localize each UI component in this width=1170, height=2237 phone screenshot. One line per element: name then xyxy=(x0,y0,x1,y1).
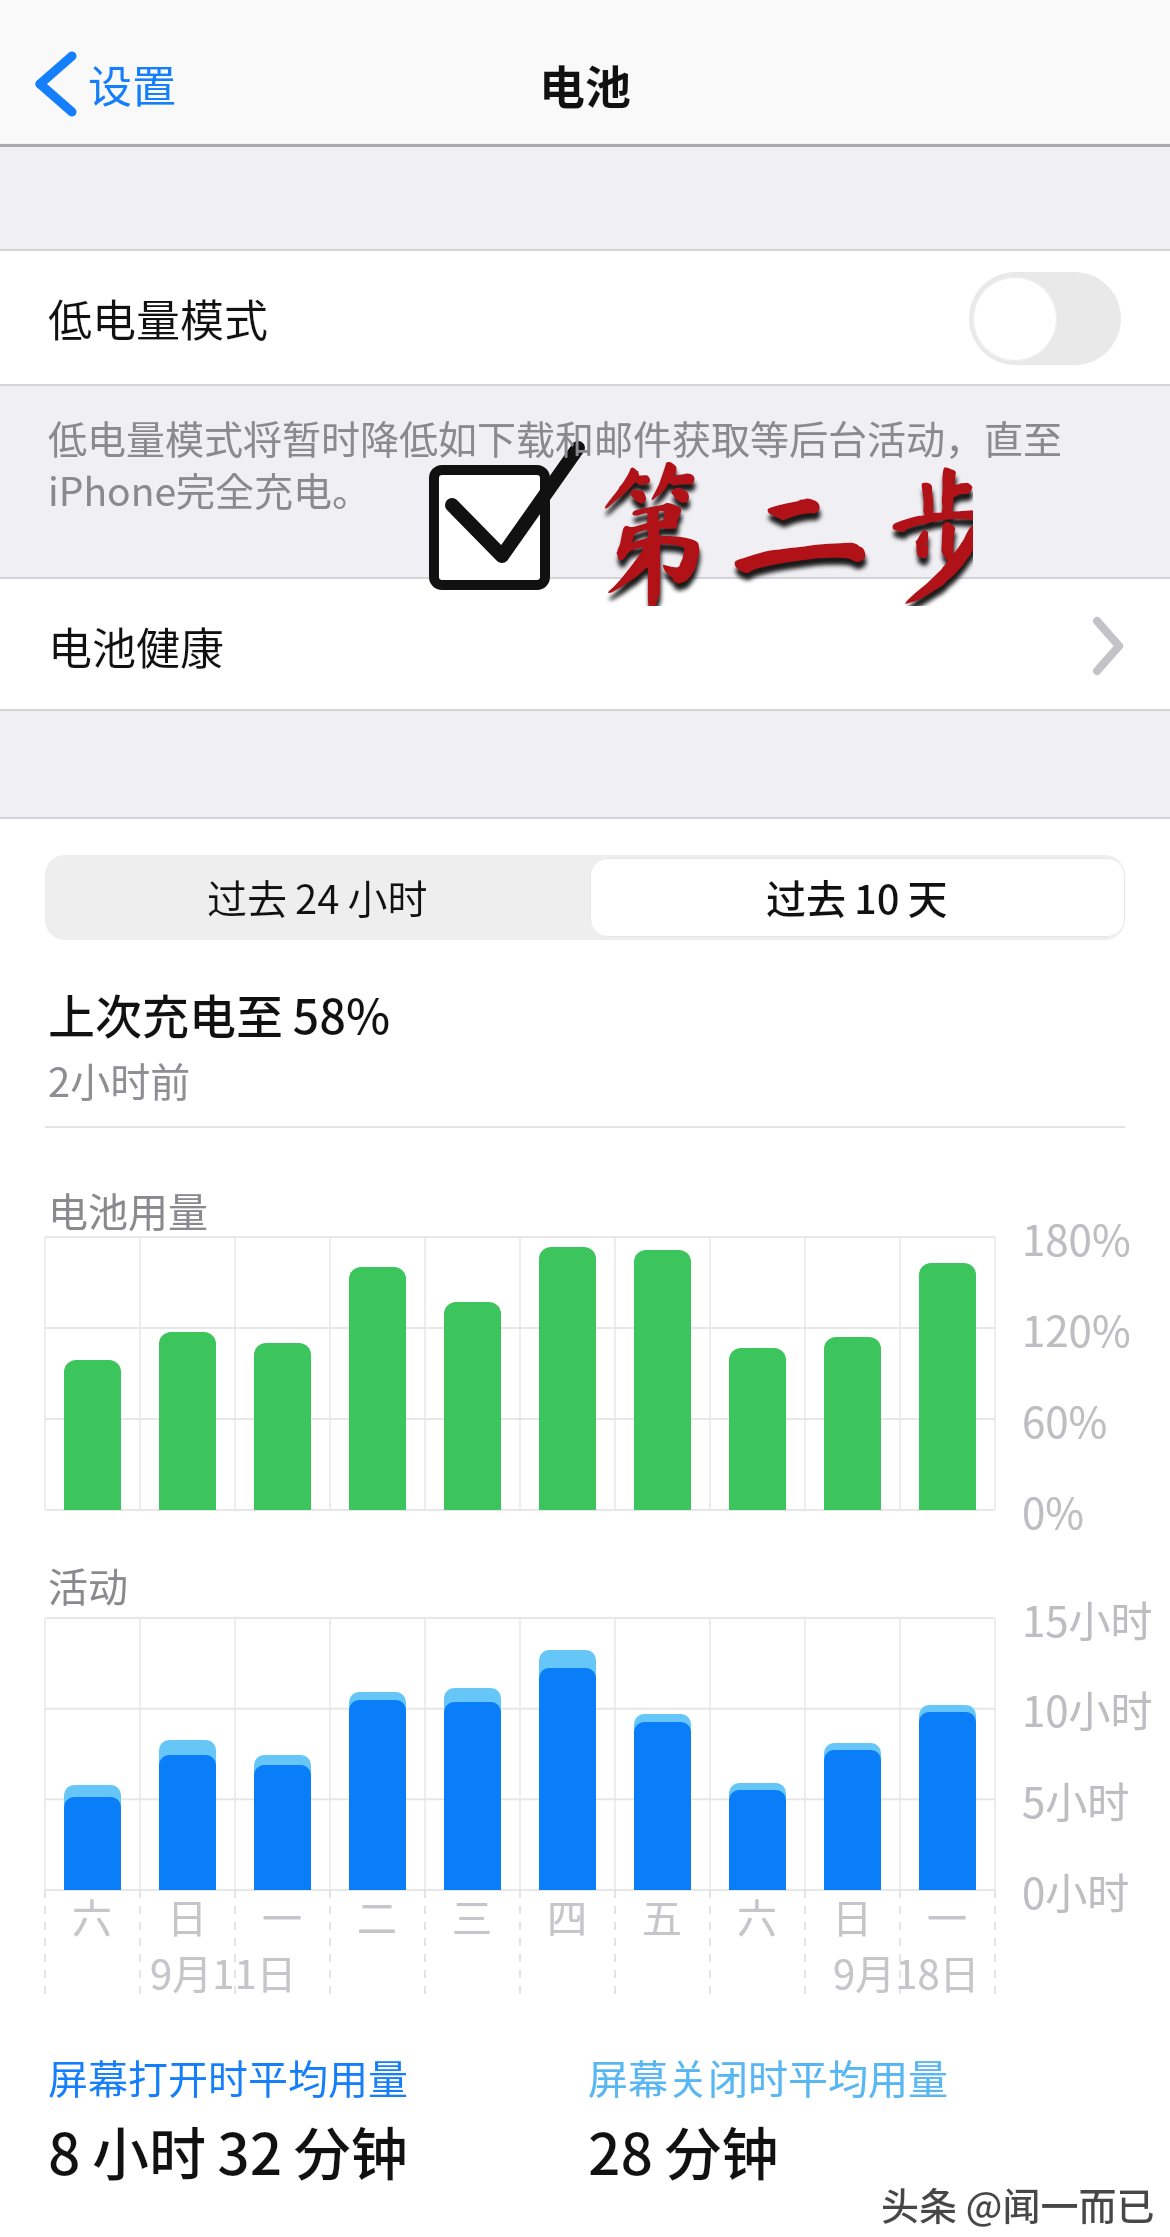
button[interactable] xyxy=(20,40,220,130)
staticText: 四 xyxy=(547,1887,587,1945)
staticText: 10小时 xyxy=(1022,1678,1153,1739)
staticText: 设置 xyxy=(88,52,176,116)
staticText: 日 xyxy=(832,1887,872,1945)
staticText: 六 xyxy=(737,1887,777,1945)
staticText: 电池 xyxy=(539,51,631,118)
staticText: 0小时 xyxy=(1022,1860,1130,1921)
staticText: 9月18日 xyxy=(833,1943,980,2001)
staticText: 一 xyxy=(927,1887,967,1945)
staticText: 日 xyxy=(167,1887,207,1945)
staticText: 头条 @闻一而已 xyxy=(881,2176,1155,2231)
staticText: 过去 10 天 xyxy=(766,868,948,926)
staticText: 三 xyxy=(452,1887,492,1945)
staticText: 0% xyxy=(1022,1480,1084,1541)
staticText: 六 xyxy=(72,1887,112,1945)
staticText: 上次充电至 58% xyxy=(48,979,391,1047)
staticText: 低电量模式 xyxy=(48,286,268,350)
staticText: 屏幕关闭时平均用量 xyxy=(588,2048,948,2106)
staticText: 过去 24 小时 xyxy=(207,868,428,926)
staticText: 二 xyxy=(357,1887,397,1945)
button[interactable] xyxy=(590,858,1125,937)
button[interactable] xyxy=(45,855,590,940)
staticText: 第二步 xyxy=(578,458,973,606)
staticText: 五 xyxy=(642,1887,682,1945)
staticText: 电池健康 xyxy=(48,614,224,678)
staticText: 28 分钟 xyxy=(588,2109,779,2192)
staticText: 低电量模式将暂时降低如下载和邮件获取等后台活动，直至 xyxy=(48,409,1063,465)
staticText: 120% xyxy=(1022,1298,1131,1359)
staticText: 一 xyxy=(262,1887,302,1945)
staticText: 180% xyxy=(1022,1207,1131,1268)
staticText: 屏幕打开时平均用量 xyxy=(48,2048,408,2106)
staticText: 活动 xyxy=(48,1556,128,1614)
staticText: 60% xyxy=(1022,1389,1108,1450)
staticText: iPhone完全充电。 xyxy=(48,461,372,517)
staticText: 8 小时 32 分钟 xyxy=(48,2109,408,2192)
button[interactable] xyxy=(0,578,1170,710)
staticText: 9月11日 xyxy=(150,1943,297,2001)
staticText: 2小时前 xyxy=(48,1051,191,1109)
staticText: 15小时 xyxy=(1022,1588,1153,1649)
staticText: 5小时 xyxy=(1022,1769,1130,1830)
staticText: 电池用量 xyxy=(48,1181,208,1239)
button[interactable] xyxy=(0,250,1170,385)
button[interactable] xyxy=(969,272,1121,365)
